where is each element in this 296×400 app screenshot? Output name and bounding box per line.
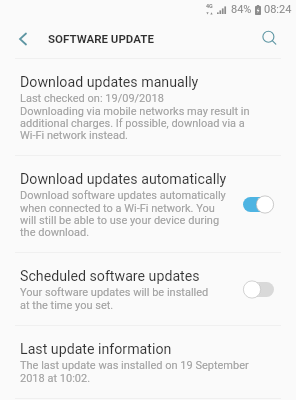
button[interactable]: Turn off <box>243 195 274 214</box>
button[interactable]: Scheduled software updates <box>0 253 296 325</box>
staticText: Scheduled software updates <box>20 268 200 285</box>
button[interactable]: Last update information <box>0 326 296 398</box>
button[interactable]: Download updates automatically <box>0 156 296 252</box>
staticText: 84% <box>231 3 252 16</box>
button[interactable]: Download updates manually <box>0 59 296 155</box>
button[interactable]: Navigate up <box>11 27 35 51</box>
staticText: 4G <box>206 3 213 9</box>
staticText: The last update was installed on 19 Sept… <box>20 359 254 384</box>
staticText: Download updates manually <box>20 74 254 91</box>
staticText: Your software updates will be installed … <box>20 286 215 311</box>
staticText: SOFTWARE UPDATE <box>48 32 154 45</box>
button[interactable]: Search <box>257 26 283 52</box>
button[interactable]: Turn on <box>243 280 274 299</box>
staticText: Last update information <box>20 341 254 358</box>
staticText: 08:24 <box>264 3 292 16</box>
staticText: Download updates automatically <box>20 171 227 188</box>
staticText: Download software updates automatically … <box>20 189 228 238</box>
staticText: Last checked on: 19/09/2018 Downloading … <box>20 92 254 141</box>
